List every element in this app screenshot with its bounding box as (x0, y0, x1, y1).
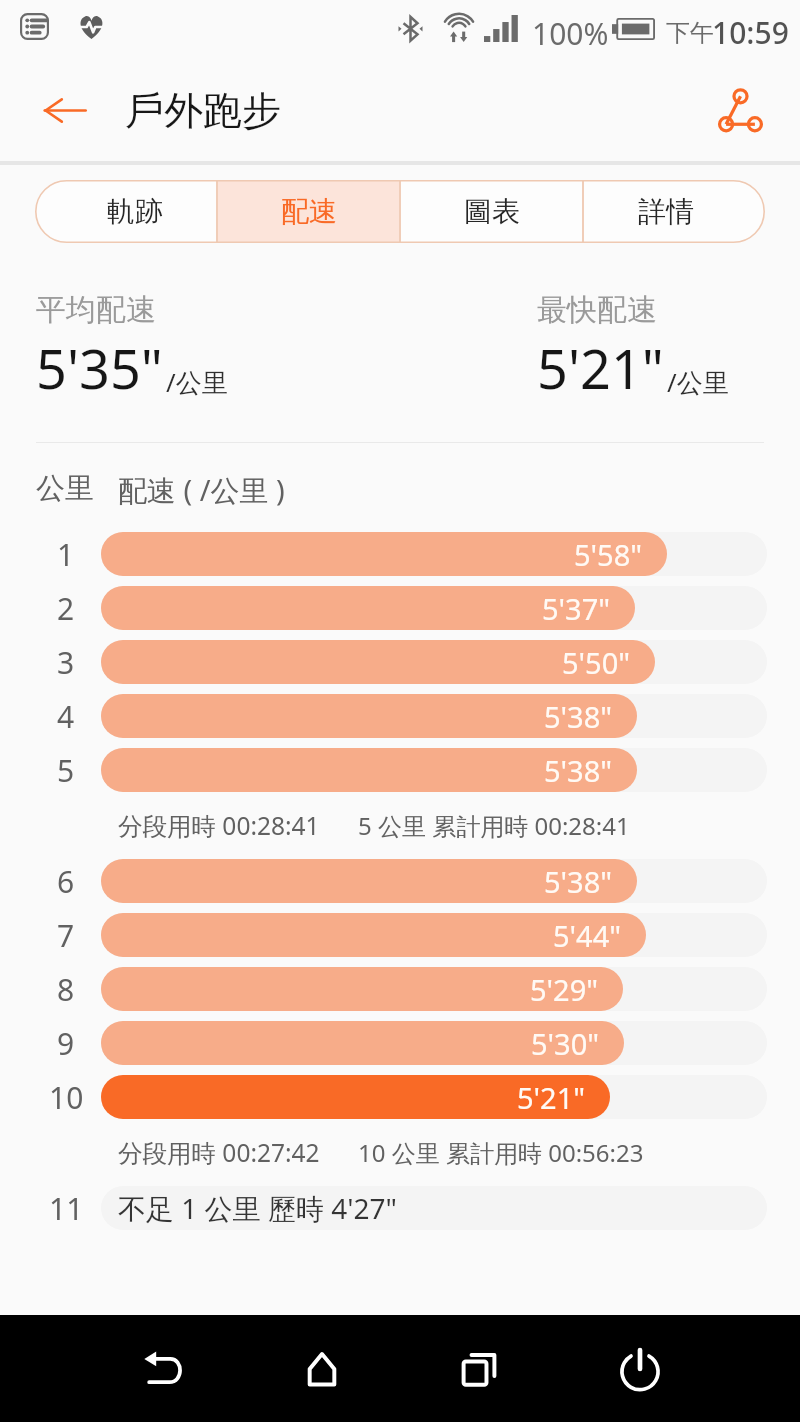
staticText: 3 (57, 642, 75, 683)
staticText: 4 (57, 696, 75, 737)
staticText: 5'38" (544, 751, 613, 790)
staticText: 100% (532, 13, 609, 54)
button[interactable]: Recents (437, 1315, 521, 1422)
staticText: 不足 1 公里 歷時 4'27" (118, 1189, 397, 1227)
staticText: 軌跡 (107, 194, 163, 229)
staticText: 5 公里 累計用時 00:28:41 (358, 809, 630, 842)
staticText: 5'44" (553, 916, 622, 955)
staticText: 配速 ( /公里 ) (118, 470, 285, 510)
staticText: 2 (57, 588, 75, 629)
button[interactable]: 5'38" (101, 859, 767, 903)
staticText: 配速 (281, 194, 337, 229)
staticText: 平均配速 (36, 291, 156, 329)
button[interactable]: 不足 1 公里 歷時 4'27" (101, 1186, 767, 1230)
button[interactable]: 詳情 (584, 180, 765, 243)
button[interactable]: 5'30" (101, 1021, 767, 1065)
staticText: 7 (57, 915, 75, 956)
staticText: 1 (57, 534, 75, 575)
staticText: 5'38" (544, 697, 613, 736)
button[interactable]: 圖表 (401, 180, 582, 243)
staticText: 11 (49, 1188, 84, 1229)
staticText: 詳情 (638, 194, 694, 229)
button[interactable]: Power (598, 1315, 682, 1422)
staticText: 下午 (666, 18, 714, 48)
button[interactable]: 5'44" (101, 913, 767, 957)
staticText: 公里 (36, 470, 94, 507)
button[interactable]: 5'38" (101, 748, 767, 792)
staticText: /公里 (166, 364, 228, 400)
button[interactable]: Share (708, 58, 772, 162)
staticText: 5'30" (531, 1024, 600, 1063)
staticText: 5 (57, 750, 75, 791)
staticText: 5'58" (574, 535, 643, 574)
staticText: 10 公里 累計用時 00:56:23 (358, 1136, 644, 1169)
staticText: 分段用時 00:28:41 (118, 809, 320, 842)
staticText: 5'29" (530, 970, 599, 1009)
staticText: 9 (57, 1023, 75, 1064)
button[interactable]: 5'29" (101, 967, 767, 1011)
button[interactable]: 5'58" (101, 532, 767, 576)
staticText: 10:59 (712, 12, 789, 53)
button[interactable]: 配速 (218, 180, 399, 243)
staticText: 5'35" (36, 331, 163, 405)
staticText: /公里 (667, 364, 729, 400)
button[interactable]: Back (123, 1315, 207, 1422)
button[interactable]: 5'50" (101, 640, 767, 684)
staticText: 8 (57, 969, 75, 1010)
staticText: 5'21" (517, 1078, 586, 1117)
staticText: 6 (57, 861, 75, 902)
staticText: 分段用時 00:27:42 (118, 1136, 320, 1169)
button[interactable]: Home (280, 1315, 364, 1422)
staticText: 5'37" (542, 589, 611, 628)
button[interactable]: Back (22, 58, 106, 162)
button[interactable]: 5'21" (101, 1075, 767, 1119)
staticText: 5'38" (544, 862, 613, 901)
staticText: 5'21" (537, 331, 664, 405)
staticText: 最快配速 (537, 291, 657, 329)
staticText: 戶外跑步 (125, 86, 281, 135)
staticText: 5'50" (562, 643, 631, 682)
button[interactable]: 5'37" (101, 586, 767, 630)
staticText: 圖表 (464, 194, 520, 229)
button[interactable]: 軌跡 (35, 180, 216, 243)
button[interactable]: 5'38" (101, 694, 767, 738)
staticText: 10 (49, 1077, 84, 1118)
